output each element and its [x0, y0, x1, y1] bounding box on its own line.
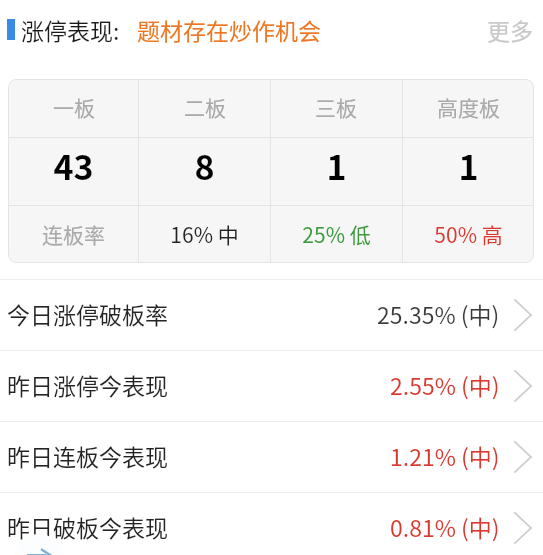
- staticText: 连板率: [42, 219, 105, 249]
- button[interactable]: 昨日涨停今表现: [0, 351, 543, 421]
- staticText: 昨日破板今表现: [7, 510, 168, 543]
- staticText: 一板: [53, 92, 95, 122]
- staticText: 今日涨停破板率: [7, 297, 168, 330]
- staticText: 1: [458, 141, 479, 190]
- staticText: 三板: [315, 92, 357, 122]
- button[interactable]: 更多: [487, 0, 533, 59]
- staticText: 0.81% (中): [390, 510, 500, 543]
- button[interactable]: 昨日连板今表现: [0, 422, 543, 492]
- staticText: 8: [194, 141, 215, 190]
- staticText: 题材存在炒作机会: [137, 13, 321, 46]
- staticText: 昨日涨停今表现: [7, 368, 168, 401]
- staticText: 25% 低: [302, 219, 371, 249]
- button[interactable]: Share: [14, 534, 64, 555]
- staticText: 高度板: [437, 92, 500, 122]
- staticText: 昨日连板今表现: [7, 439, 168, 472]
- staticText: 2.55% (中): [390, 368, 500, 401]
- button[interactable]: 今日涨停破板率: [0, 280, 543, 350]
- button[interactable]: 昨日破板今表现: [0, 493, 543, 555]
- staticText: 50% 高: [434, 219, 503, 249]
- staticText: 涨停表现:: [21, 13, 120, 46]
- staticText: 43: [53, 141, 94, 190]
- staticText: 二板: [184, 92, 226, 122]
- staticText: 1: [326, 141, 347, 190]
- staticText: 25.35% (中): [377, 297, 500, 330]
- staticText: 1.21% (中): [390, 439, 500, 472]
- staticText: 更多: [487, 13, 533, 46]
- staticText: 16% 中: [170, 219, 239, 249]
